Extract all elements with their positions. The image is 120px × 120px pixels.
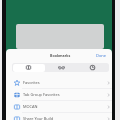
button[interactable]: Favorites [6,77,112,88]
staticText: Favorites [23,80,106,85]
button[interactable]: History [77,63,109,72]
staticText: MOCAN [23,104,106,109]
staticText: Tab Group Favorites [23,92,106,97]
button[interactable]: Bookmarks [12,63,45,72]
button[interactable]: MOCAN [6,101,112,112]
button[interactable]: Tab Group Favorites [6,89,112,100]
staticText: Done [96,53,107,58]
staticText: Bookmarks [50,53,71,58]
button[interactable]: Done [93,52,112,59]
button[interactable]: Share Your Build [6,113,112,120]
button[interactable]: Reading List [45,63,77,72]
staticText: Share Your Build [23,116,106,120]
